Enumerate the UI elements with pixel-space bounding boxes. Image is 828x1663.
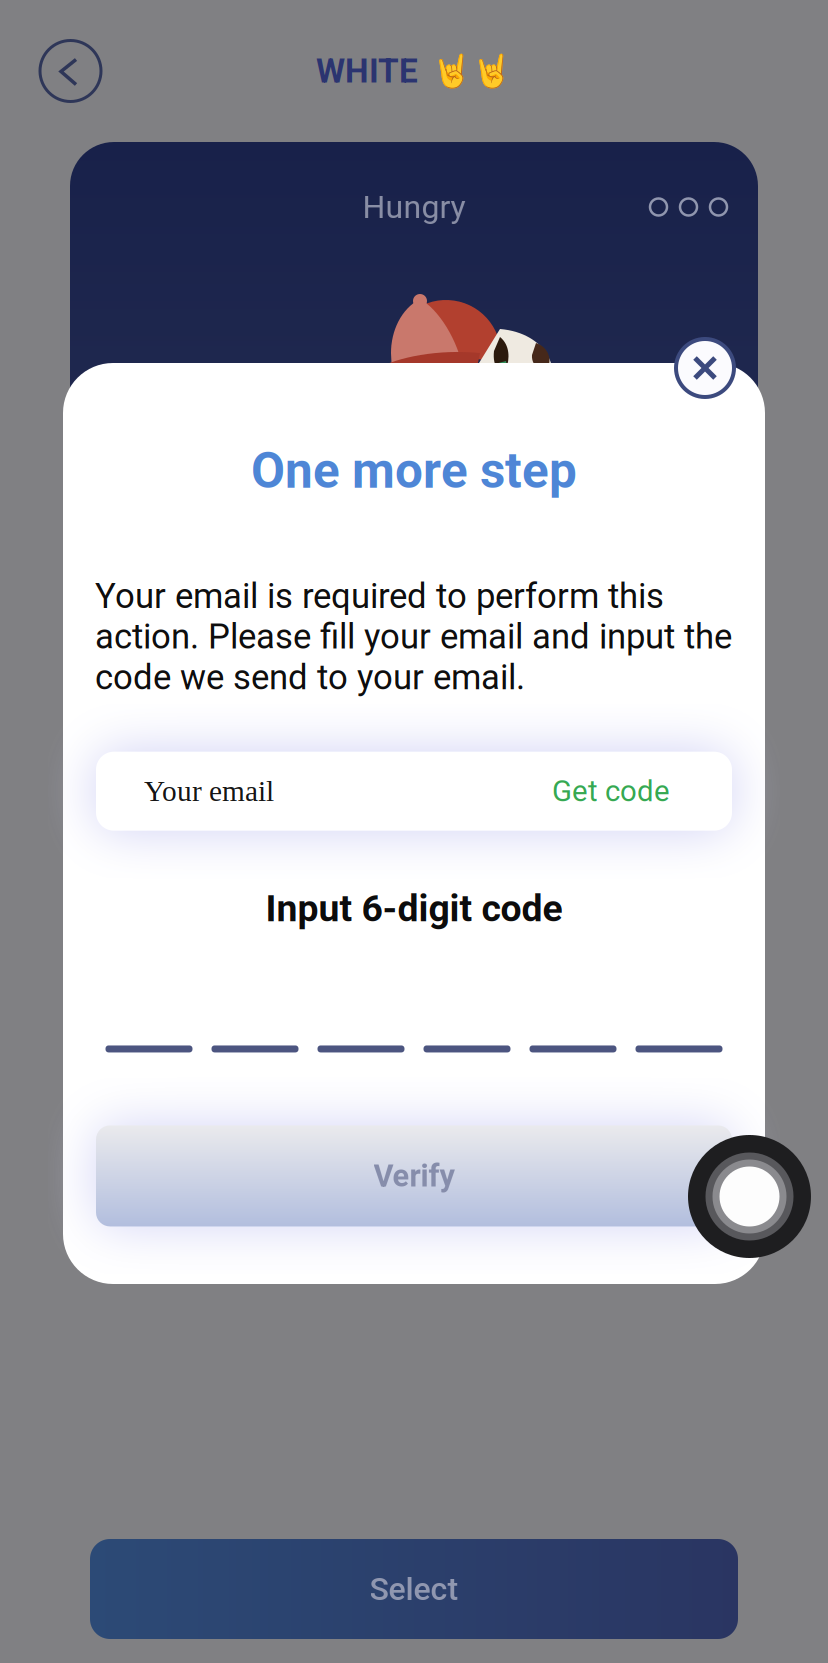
button[interactable]: Back: [40, 40, 101, 101]
staticText: Your email is required to perform this a…: [95, 576, 732, 698]
staticText: Select: [369, 1570, 458, 1608]
staticText: Your email: [144, 775, 274, 807]
button[interactable]: More options: [650, 198, 727, 215]
button[interactable]: Verify: [96, 1125, 732, 1226]
staticText: Verify: [373, 1158, 454, 1194]
button[interactable]: Select: [90, 1539, 738, 1639]
staticText: WHITE: [316, 51, 418, 91]
button[interactable]: Get code: [552, 774, 670, 808]
staticText: Input 6-digit code: [265, 887, 562, 930]
button[interactable]: Close: [676, 339, 734, 397]
staticText: Hungry: [362, 188, 465, 226]
staticText: Get code: [552, 774, 670, 808]
staticText: 🤘🤘: [432, 52, 512, 90]
staticText: One more step: [251, 442, 577, 500]
